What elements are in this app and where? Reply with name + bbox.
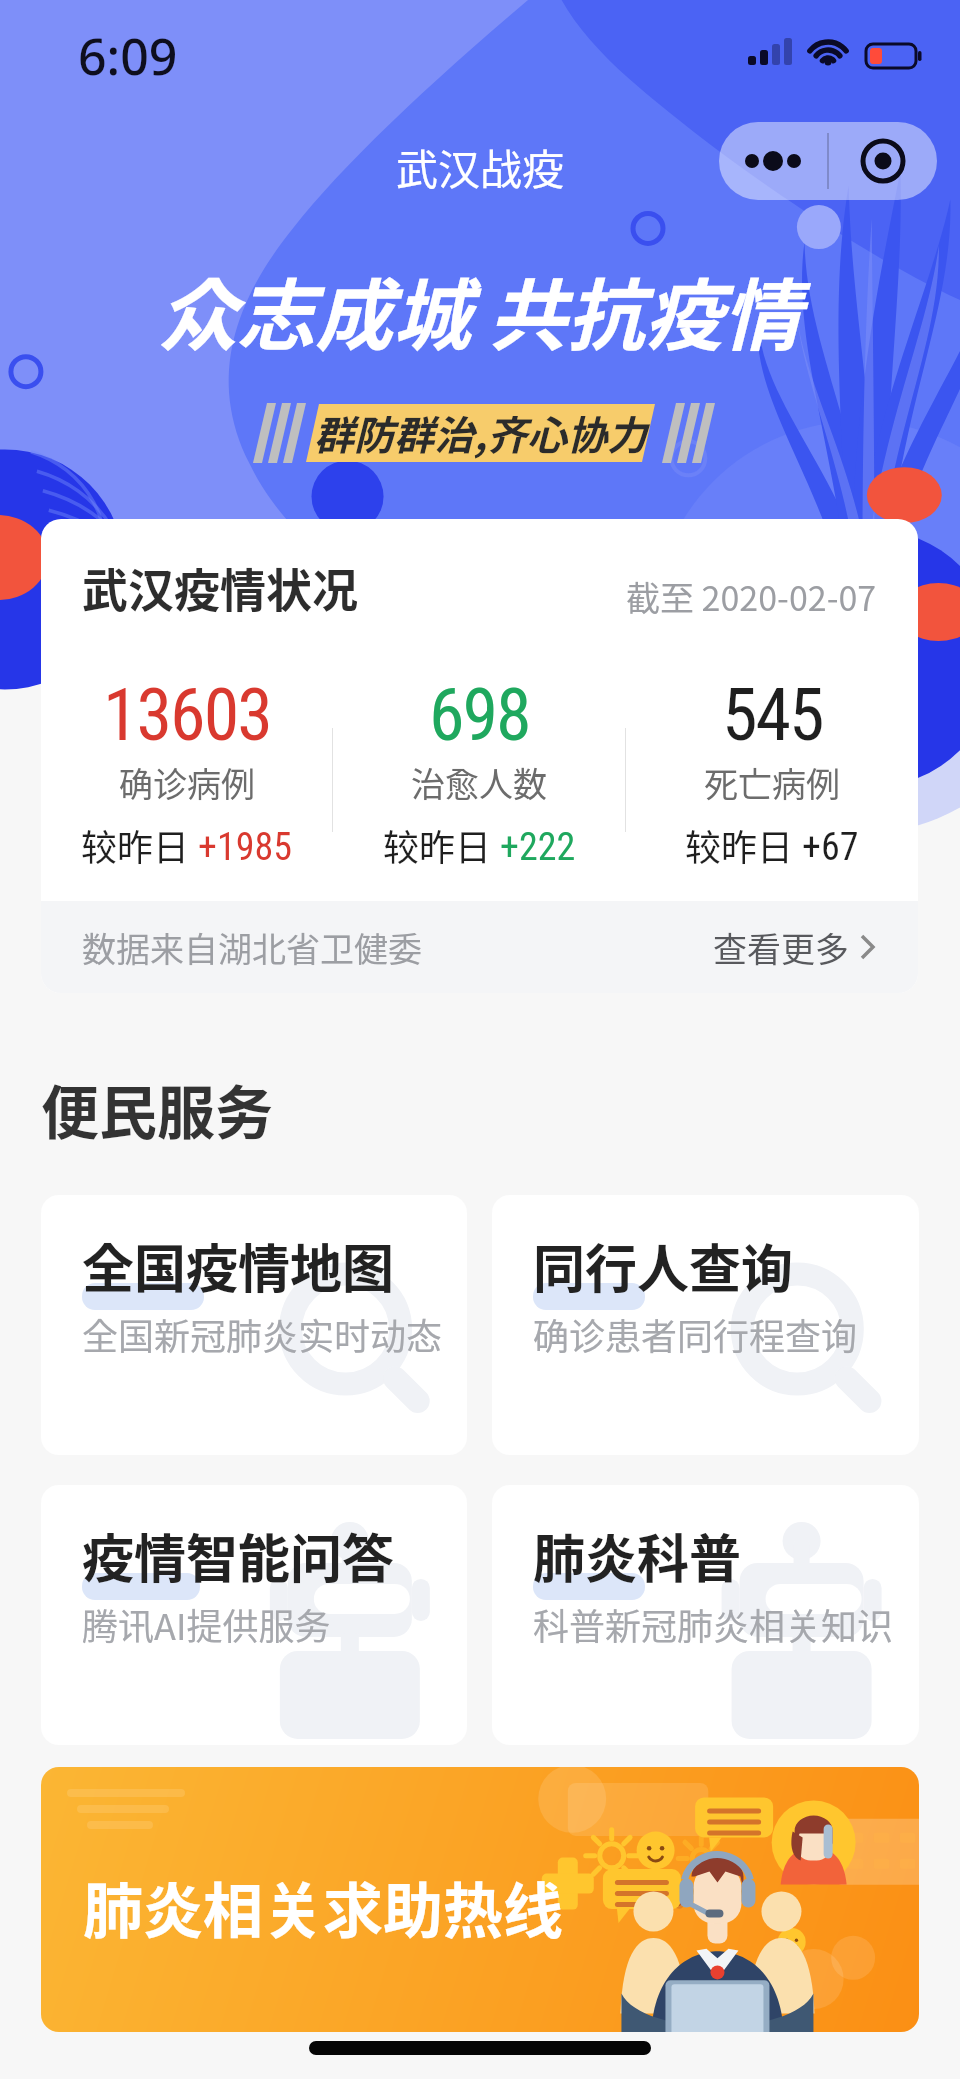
staticText: 6:09 (78, 22, 178, 90)
staticText: 死亡病例 (704, 758, 840, 807)
button[interactable]: Close mini program (829, 122, 937, 200)
staticText: 全国疫情地图 (82, 1228, 395, 1303)
staticText: 群防群治,齐心协力 (314, 404, 647, 462)
staticText: 较昨日 (383, 819, 500, 871)
staticText: 13603 (103, 673, 271, 757)
staticText: 肺炎科普 (533, 1518, 742, 1593)
button[interactable]: 数据来自湖北省卫健委 (41, 901, 918, 993)
staticText: 肺炎相关求助热线 (83, 1863, 563, 1950)
staticText: 腾讯AI提供服务 (82, 1598, 331, 1650)
staticText: 武汉疫情状况 (82, 554, 358, 621)
staticText: 疫情智能问答 (82, 1518, 395, 1593)
staticText: 科普新冠肺炎相关知识 (533, 1598, 894, 1650)
staticText: +67 (802, 825, 859, 870)
button[interactable]: 疫情智能问答 (41, 1485, 467, 1745)
staticText: 查看更多 (713, 923, 849, 972)
staticText: 便民服务 (41, 1067, 274, 1151)
staticText: 较昨日 (685, 819, 802, 871)
staticText: 全国新冠肺炎实时动态 (82, 1308, 443, 1360)
button[interactable]: 同行人查询 (492, 1195, 919, 1455)
staticText: 确诊病例 (119, 758, 255, 807)
staticText: 数据来自湖北省卫健委 (82, 923, 422, 972)
staticText: 众志成城 共抗疫情 (159, 254, 801, 367)
staticText: 698 (429, 673, 530, 757)
button[interactable]: 全国疫情地图 (41, 1195, 467, 1455)
staticText: 武汉战疫 (396, 136, 565, 197)
staticText: 较昨日 (81, 819, 198, 871)
staticText: 确诊患者同行程查询 (533, 1308, 858, 1360)
button[interactable]: More options (719, 122, 827, 200)
staticText: 治愈人数 (411, 758, 547, 807)
staticText: 截至 2020-02-07 (626, 572, 877, 621)
button[interactable]: 肺炎科普 (492, 1485, 919, 1745)
staticText: +222 (500, 825, 576, 870)
staticText: +1985 (198, 825, 292, 870)
button[interactable]: 肺炎相关求助热线 (41, 1767, 919, 2032)
staticText: 同行人查询 (533, 1228, 794, 1303)
staticText: 545 (722, 673, 823, 757)
